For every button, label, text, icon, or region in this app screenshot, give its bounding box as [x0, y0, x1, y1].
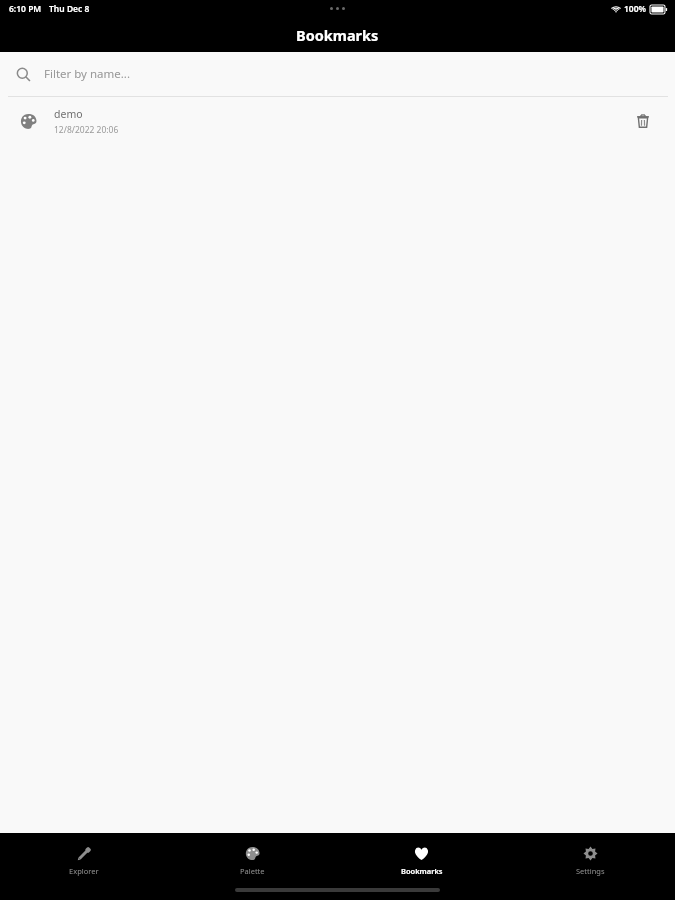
button[interactable]: Explorer [0, 833, 168, 888]
staticText: Palette [240, 866, 265, 876]
staticText: 6:10 PM [9, 3, 42, 15]
staticText: Thu Dec 8 [49, 3, 90, 15]
staticText: 100% [624, 3, 647, 15]
button[interactable]: Filter by name... [0, 52, 675, 96]
staticText: demo [54, 107, 83, 121]
staticText: Bookmarks [296, 25, 379, 45]
button[interactable]: Palette [168, 833, 337, 888]
button[interactable]: Delete bookmark [623, 101, 663, 141]
staticText: Explorer [69, 866, 99, 876]
button[interactable]: Settings [506, 833, 675, 888]
staticText: Settings [576, 866, 605, 876]
button[interactable]: demo [0, 97, 675, 145]
staticText: 12/8/2022 20:06 [54, 124, 119, 136]
button[interactable]: Bookmarks [337, 833, 506, 888]
staticText: Filter by name... [44, 66, 131, 82]
staticText: Bookmarks [401, 866, 443, 876]
